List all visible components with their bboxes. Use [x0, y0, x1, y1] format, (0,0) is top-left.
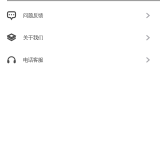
staticText: 问题反馈: [23, 12, 43, 19]
staticText: 电话客服: [23, 57, 43, 63]
button[interactable]: 问题反馈: [0, 4, 160, 27]
staticText: 关于我们: [23, 34, 43, 41]
button[interactable]: 电话客服: [0, 49, 160, 71]
button[interactable]: 关于我们: [0, 27, 160, 49]
